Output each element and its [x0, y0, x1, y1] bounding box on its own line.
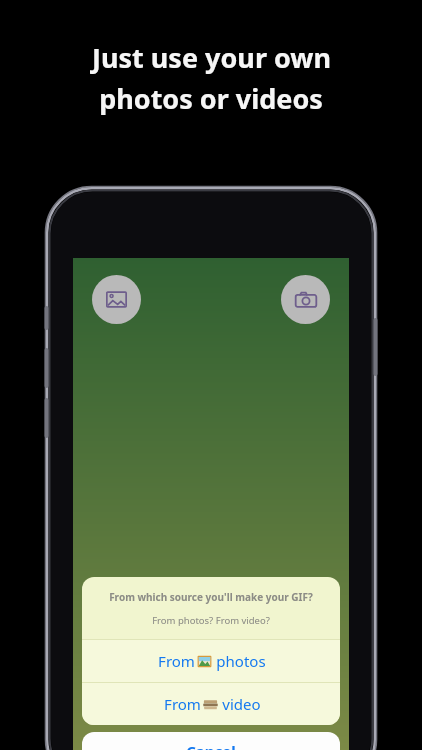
- staticText: Just use your own: [92, 39, 331, 76]
- staticText: From: [156, 651, 197, 671]
- button[interactable]: Cancel: [82, 732, 340, 750]
- button[interactable]: Choose from photo library: [92, 275, 141, 324]
- staticText: Cancel: [186, 741, 236, 750]
- staticText: photos: [212, 651, 266, 671]
- button[interactable]: Take a photo with the camera: [281, 275, 330, 324]
- staticText: photos or videos: [99, 80, 323, 117]
- button[interactable]: From: [82, 640, 340, 682]
- staticText: From photos? From video?: [152, 614, 270, 627]
- staticText: From which source you'll make your GIF?: [109, 590, 313, 604]
- button[interactable]: From: [82, 683, 340, 725]
- staticText: video: [218, 694, 261, 714]
- staticText: From: [162, 694, 203, 714]
